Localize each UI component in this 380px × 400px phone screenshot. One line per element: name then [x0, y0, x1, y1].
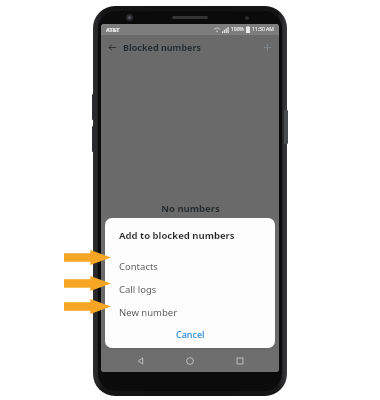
button[interactable]: Add — [258, 38, 276, 56]
staticText: Cancel — [176, 328, 205, 340]
button[interactable]: Cancel — [164, 324, 217, 344]
staticText: 100% — [231, 26, 244, 33]
button[interactable]: Contacts — [105, 255, 275, 278]
button[interactable]: Call logs — [105, 278, 275, 301]
staticText: New number — [119, 306, 178, 319]
staticText: Contacts — [119, 260, 158, 273]
staticText: Call logs — [119, 283, 157, 296]
staticText: No numbers — [161, 202, 220, 215]
button[interactable]: Recent apps — [230, 351, 250, 371]
staticText: 11:30 AM — [252, 26, 274, 33]
staticText: Blocked numbers — [123, 41, 201, 53]
staticText: AT&T — [106, 26, 120, 33]
button[interactable]: Back — [103, 38, 121, 56]
button[interactable]: Home — [180, 351, 200, 371]
button[interactable]: New number — [105, 301, 275, 324]
staticText: Add to blocked numbers — [119, 229, 235, 242]
button[interactable]: Back — [131, 351, 151, 371]
